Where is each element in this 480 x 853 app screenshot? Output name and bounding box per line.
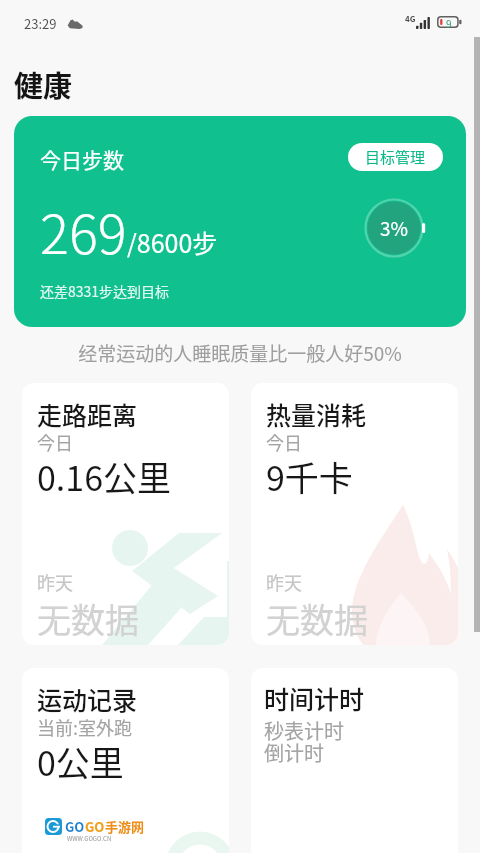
staticText: 热量消耗 bbox=[266, 396, 367, 432]
staticText: GO bbox=[65, 817, 85, 836]
staticText: 当前:室外跑 bbox=[37, 714, 133, 740]
staticText: 时间计时 bbox=[264, 680, 365, 716]
staticText: 今日 bbox=[37, 429, 73, 455]
staticText: 9千卡 bbox=[266, 452, 353, 501]
staticText: 健康 bbox=[14, 63, 73, 105]
staticText: 经常运动的人睡眠质量比一般人好50% bbox=[0, 339, 480, 367]
staticText: 4G bbox=[405, 13, 416, 25]
staticText: 0公里 bbox=[37, 737, 124, 786]
staticText: 还差8331步达到目标 bbox=[40, 281, 170, 301]
staticText: 23:29 bbox=[24, 14, 57, 33]
staticText: 走路距离 bbox=[37, 396, 138, 432]
button[interactable]: 今日步数 bbox=[14, 116, 466, 327]
staticText: 昨天 bbox=[266, 569, 302, 595]
staticText: GO bbox=[85, 817, 105, 836]
staticText: 昨天 bbox=[37, 569, 73, 595]
staticText: 269 bbox=[40, 191, 127, 269]
staticText: 无数据 bbox=[266, 594, 368, 643]
button[interactable]: 目标管理 bbox=[348, 143, 443, 171]
button[interactable]: 走路距离 bbox=[22, 383, 229, 645]
button[interactable]: 运动记录 bbox=[22, 668, 229, 853]
staticText: 无数据 bbox=[37, 594, 139, 643]
staticText: WWW.GOGO.CN bbox=[67, 834, 112, 843]
other: Step tracking bbox=[67, 18, 83, 30]
staticText: 秒表计时 bbox=[264, 716, 344, 745]
staticText: 9 bbox=[446, 16, 452, 28]
staticText: 今日 bbox=[266, 429, 302, 455]
staticText: 目标管理 bbox=[365, 146, 426, 168]
staticText: 今日步数 bbox=[40, 144, 124, 174]
staticText: 0.16公里 bbox=[37, 452, 172, 501]
button[interactable]: 时间计时 bbox=[251, 668, 458, 853]
staticText: 倒计时 bbox=[264, 738, 324, 767]
staticText: /8600步 bbox=[127, 224, 218, 260]
staticText: 3% bbox=[380, 214, 409, 242]
button[interactable]: 热量消耗 bbox=[251, 383, 458, 645]
staticText: 手游网 bbox=[105, 817, 145, 836]
staticText: 运动记录 bbox=[37, 681, 138, 717]
